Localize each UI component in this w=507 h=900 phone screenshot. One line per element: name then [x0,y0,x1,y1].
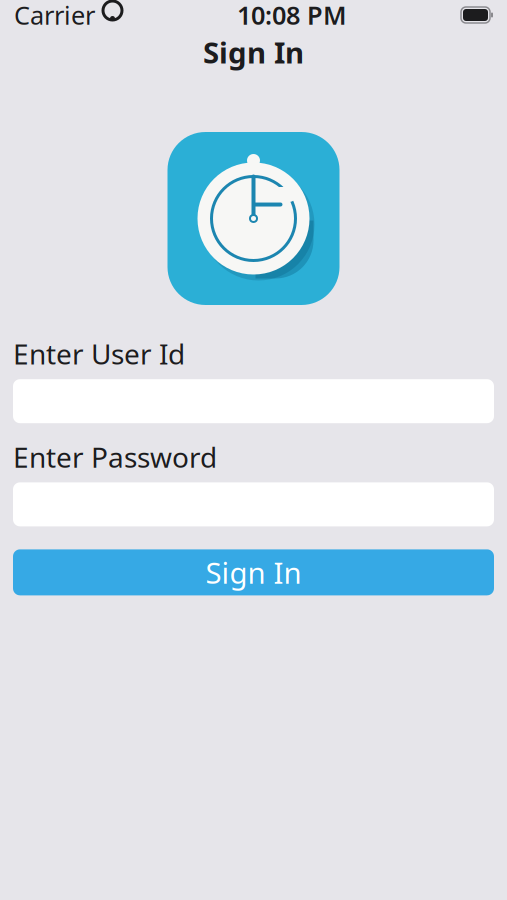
staticText: Enter Password [13,438,217,475]
staticText: Carrier [14,0,95,32]
staticText: Sign In [203,32,304,71]
button[interactable]: Sign In [0,549,507,595]
button[interactable] [0,482,507,526]
staticText: Sign In [205,553,301,592]
staticText: Enter User Id [13,335,185,372]
staticText: 10:08 PM [237,0,347,32]
button[interactable] [0,379,507,423]
